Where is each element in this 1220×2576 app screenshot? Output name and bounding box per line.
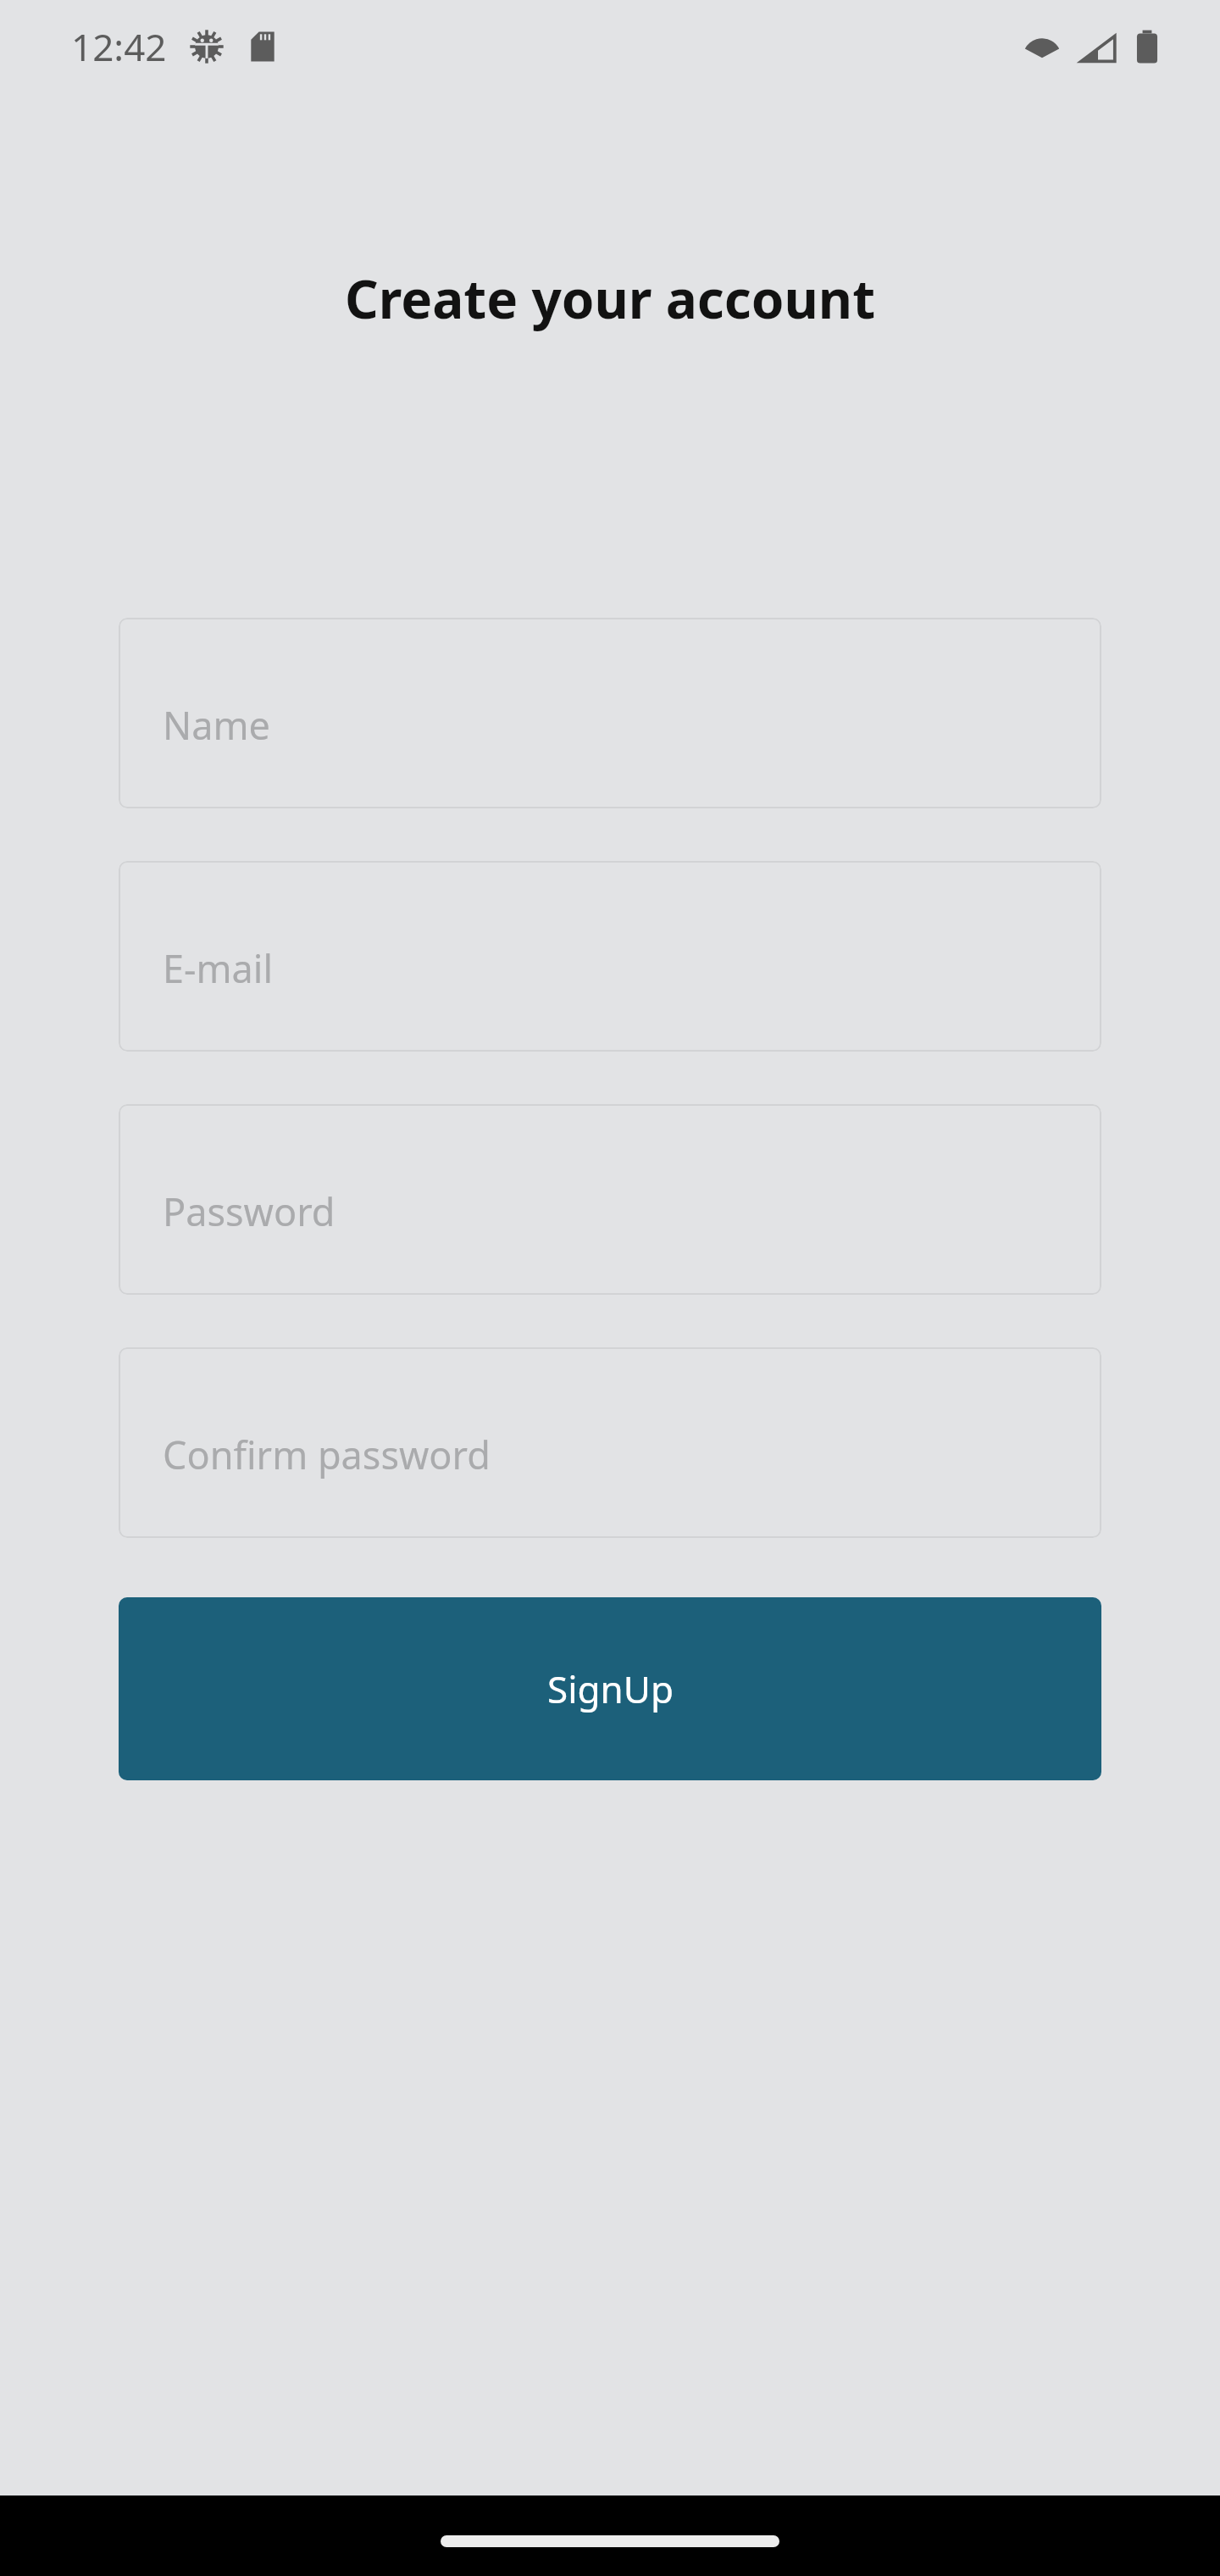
button[interactable]: Password — [119, 1104, 1101, 1295]
button[interactable]: Home gesture bar — [441, 2535, 779, 2547]
button[interactable]: Name — [119, 618, 1101, 808]
button[interactable]: Confirm password — [119, 1347, 1101, 1538]
button[interactable]: SignUp — [119, 1597, 1101, 1780]
button[interactable]: E-mail — [119, 861, 1101, 1052]
staticText: Create your account — [0, 263, 1220, 334]
staticText: SignUp — [547, 1663, 674, 1714]
staticText: 12:42 — [71, 21, 167, 72]
staticText: Confirm password — [163, 1429, 491, 1480]
staticText: Name — [163, 699, 270, 751]
staticText: Password — [163, 1185, 335, 1237]
staticText: E-mail — [163, 942, 274, 994]
